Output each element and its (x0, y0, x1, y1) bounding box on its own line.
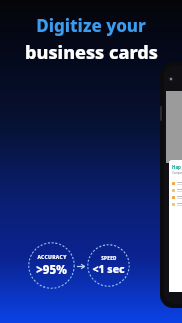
button[interactable] (172, 203, 182, 206)
button[interactable]: SPEED (87, 244, 130, 287)
staticText: Digitize your (36, 14, 146, 37)
staticText: ACCURACY (37, 254, 67, 261)
staticText: <1 sec (92, 262, 125, 276)
staticText: Company (172, 171, 182, 175)
staticText: business cards (25, 40, 158, 65)
staticText: SPEED (101, 255, 117, 261)
button[interactable] (172, 189, 182, 192)
button[interactable]: Hap (169, 160, 182, 292)
staticText: >95% (36, 262, 67, 278)
staticText: Hap (172, 164, 181, 170)
button[interactable] (172, 196, 182, 199)
button[interactable] (172, 182, 182, 185)
other: Phone preview (160, 62, 182, 308)
button[interactable]: ACCURACY (28, 242, 75, 289)
